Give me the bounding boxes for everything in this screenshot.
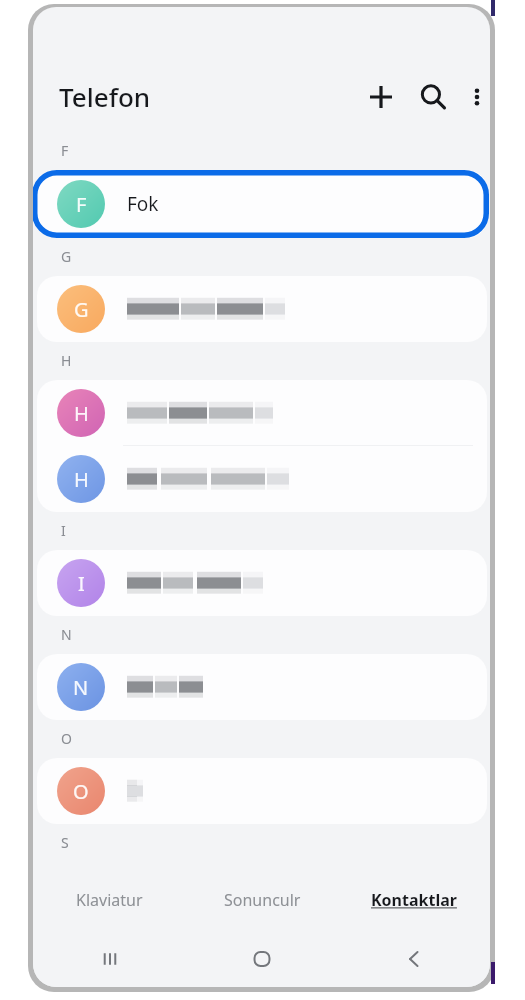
staticText: Telefon bbox=[59, 79, 151, 114]
staticText: I bbox=[61, 521, 66, 540]
staticText: F bbox=[76, 191, 87, 218]
button[interactable]: More options bbox=[453, 73, 490, 121]
button[interactable]: H bbox=[37, 446, 487, 512]
staticText: S bbox=[61, 833, 69, 852]
staticText: H bbox=[61, 351, 72, 370]
button[interactable]: Back bbox=[338, 931, 490, 987]
button[interactable]: Klaviatur bbox=[33, 869, 186, 931]
staticText: H bbox=[74, 466, 89, 493]
button[interactable]: Add contact bbox=[357, 73, 405, 121]
staticText: O bbox=[61, 729, 72, 748]
button[interactable]: Search bbox=[409, 73, 457, 121]
staticText: H bbox=[74, 400, 89, 427]
staticText: Kontaktlar bbox=[371, 889, 457, 911]
staticText: O bbox=[73, 778, 89, 805]
button[interactable]: Kontaktlar bbox=[338, 869, 490, 931]
button[interactable]: Recent apps bbox=[33, 931, 186, 987]
button[interactable]: Home bbox=[186, 931, 338, 987]
button[interactable]: O bbox=[37, 758, 487, 824]
button[interactable]: F bbox=[37, 170, 487, 238]
button[interactable]: Sonunculr bbox=[186, 869, 338, 931]
button[interactable]: N bbox=[37, 654, 487, 720]
staticText: Klaviatur bbox=[76, 889, 143, 911]
button[interactable]: I bbox=[37, 550, 487, 616]
staticText: G bbox=[61, 247, 72, 266]
staticText: Fok bbox=[127, 191, 159, 217]
staticText: Sonunculr bbox=[224, 889, 301, 911]
staticText: G bbox=[74, 296, 89, 323]
staticText: N bbox=[61, 625, 72, 644]
button[interactable]: G bbox=[37, 276, 487, 342]
button[interactable]: H bbox=[37, 380, 487, 446]
staticText: F bbox=[61, 141, 69, 160]
staticText: N bbox=[73, 674, 89, 701]
staticText: I bbox=[78, 570, 85, 597]
